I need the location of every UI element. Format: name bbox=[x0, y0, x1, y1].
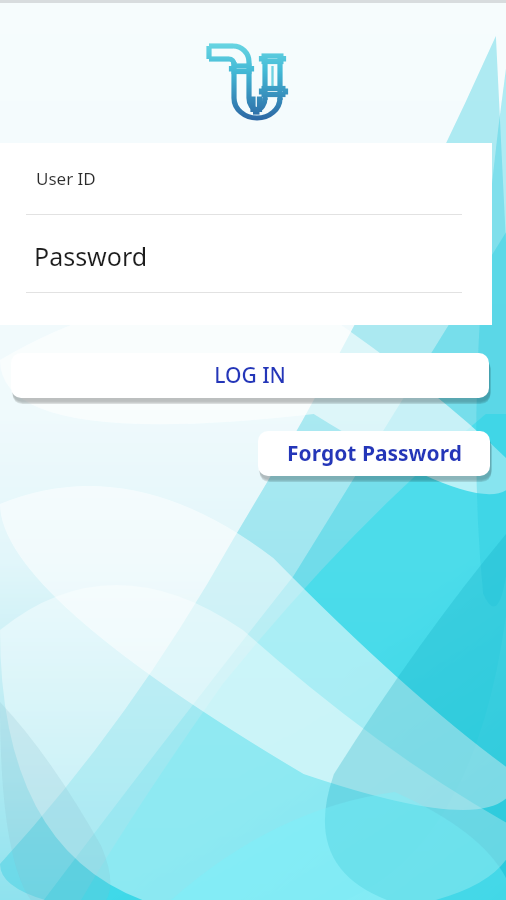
staticText: Forgot Password bbox=[287, 439, 462, 468]
staticText: Password bbox=[34, 239, 148, 273]
staticText: LOG IN bbox=[214, 361, 286, 390]
button[interactable]: LOG IN bbox=[11, 353, 489, 398]
other: App logo bbox=[203, 26, 303, 126]
button[interactable]: Forgot Password bbox=[258, 431, 490, 476]
staticText: User ID bbox=[36, 167, 96, 190]
